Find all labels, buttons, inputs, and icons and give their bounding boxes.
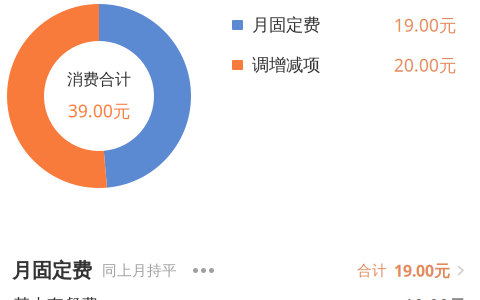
staticText: 月固定费 [12,258,92,283]
button[interactable]: 基本套餐费 [0,288,480,300]
staticText: 基本套餐费 [13,295,98,300]
staticText: 20.00元 [394,53,456,76]
staticText: 19.00元 [394,13,456,36]
button[interactable]: 月固定费 [0,253,480,288]
staticText: 合计 [357,261,387,279]
staticText: 19.00元 [404,294,466,300]
staticText: 39.00元 [68,99,130,122]
staticText: 调增减项 [252,54,320,76]
staticText: 同上月持平 [102,261,177,279]
staticText: 19.00元 [394,260,450,281]
staticText: 月固定费 [252,14,320,36]
staticText: 消费合计 [67,70,131,89]
